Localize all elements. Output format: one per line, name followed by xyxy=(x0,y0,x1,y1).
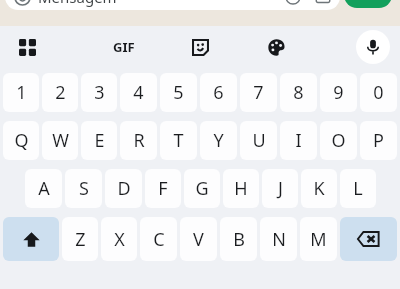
button[interactable]: U xyxy=(240,121,277,160)
button[interactable]: S xyxy=(65,169,102,208)
staticText: Q xyxy=(14,128,29,153)
button[interactable]: 8 xyxy=(280,73,317,112)
button[interactable]: 5 xyxy=(160,73,197,112)
button[interactable]: F xyxy=(145,169,181,208)
staticText: S xyxy=(79,176,89,201)
button[interactable]: 9 xyxy=(320,73,357,112)
staticText: R xyxy=(133,128,145,153)
staticText: A xyxy=(38,176,50,201)
button[interactable]: P xyxy=(360,121,397,160)
staticText: H xyxy=(234,176,248,201)
button[interactable]: Backspace xyxy=(340,217,397,261)
staticText: 7 xyxy=(253,80,264,105)
staticText: N xyxy=(272,227,286,252)
button[interactable]: T xyxy=(160,121,197,160)
staticText: 3 xyxy=(94,80,105,105)
staticText: U xyxy=(252,128,266,153)
button[interactable]: Z xyxy=(62,217,98,261)
staticText: 2 xyxy=(55,80,66,105)
staticText: GIF xyxy=(113,38,135,56)
button[interactable]: E xyxy=(81,121,117,160)
staticText: Z xyxy=(75,227,86,252)
staticText: 9 xyxy=(333,80,344,105)
button[interactable]: Shift xyxy=(3,217,59,261)
button[interactable]: I xyxy=(280,121,317,160)
staticText: D xyxy=(117,176,131,201)
staticText: Mensagem xyxy=(38,0,117,7)
staticText: 1 xyxy=(16,80,27,105)
staticText: I xyxy=(295,128,302,153)
button[interactable]: Apps xyxy=(10,30,44,64)
staticText: 4 xyxy=(133,80,144,105)
staticText: B xyxy=(233,227,245,252)
staticText: C xyxy=(153,227,165,252)
staticText: K xyxy=(313,176,325,201)
button[interactable]: 1 xyxy=(3,73,39,112)
staticText: X xyxy=(114,227,125,252)
button[interactable]: R xyxy=(120,121,157,160)
button[interactable]: J xyxy=(262,169,298,208)
button[interactable]: Stickers xyxy=(183,30,217,64)
button[interactable]: L xyxy=(340,169,376,208)
button[interactable]: K xyxy=(301,169,337,208)
staticText: P xyxy=(373,128,384,153)
button[interactable]: Q xyxy=(3,121,39,160)
button[interactable]: C xyxy=(140,217,177,261)
staticText: 0 xyxy=(373,80,384,105)
button[interactable]: O xyxy=(320,121,357,160)
staticText: L xyxy=(353,176,363,201)
staticText: 6 xyxy=(213,80,224,105)
button[interactable]: X xyxy=(101,217,137,261)
button[interactable]: A xyxy=(25,169,62,208)
staticText: M xyxy=(310,227,327,252)
staticText: E xyxy=(94,128,105,153)
button[interactable]: B xyxy=(220,217,257,261)
button[interactable]: M xyxy=(300,217,337,261)
button[interactable]: 6 xyxy=(200,73,237,112)
button[interactable]: N xyxy=(260,217,297,261)
staticText: O xyxy=(331,128,346,153)
staticText: 8 xyxy=(293,80,304,105)
button[interactable]: Send xyxy=(344,0,392,8)
staticText: G xyxy=(195,176,209,201)
staticText: 5 xyxy=(173,80,184,105)
button[interactable]: V xyxy=(180,217,217,261)
button[interactable]: 4 xyxy=(120,73,157,112)
button[interactable]: 7 xyxy=(240,73,277,112)
button[interactable]: GIF xyxy=(102,30,146,64)
staticText: F xyxy=(158,176,168,201)
staticText: J xyxy=(278,176,283,201)
button[interactable]: Mensagem xyxy=(5,0,340,10)
button[interactable]: W xyxy=(42,121,78,160)
button[interactable]: H xyxy=(223,169,259,208)
button[interactable]: 2 xyxy=(42,73,78,112)
button[interactable]: Themes xyxy=(259,30,293,64)
staticText: Y xyxy=(213,128,224,153)
button[interactable]: Voice input xyxy=(356,30,390,64)
staticText: W xyxy=(52,128,69,153)
staticText: T xyxy=(173,128,184,153)
button[interactable]: G xyxy=(184,169,220,208)
staticText: V xyxy=(193,227,204,252)
button[interactable]: D xyxy=(105,169,142,208)
button[interactable]: Y xyxy=(200,121,237,160)
button[interactable]: 3 xyxy=(81,73,117,112)
button[interactable]: 0 xyxy=(360,73,397,112)
